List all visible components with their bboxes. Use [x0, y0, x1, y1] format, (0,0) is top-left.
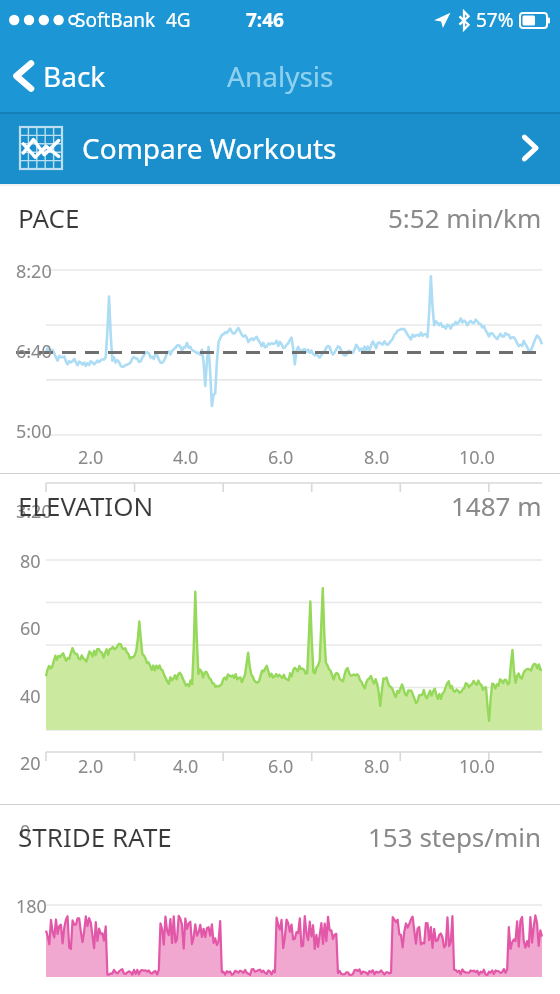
staticText: ELEVATION: [18, 488, 154, 523]
staticText: 40: [20, 684, 41, 709]
staticText: 10.0: [459, 754, 495, 779]
staticText: SoftBank: [75, 7, 156, 33]
staticText: 8.0: [364, 445, 390, 470]
staticText: 180: [16, 894, 47, 919]
staticText: 10.0: [459, 445, 495, 470]
staticText: 2.0: [78, 445, 104, 470]
staticText: 5:52 min/km: [388, 200, 542, 235]
other: Compare Workouts: [522, 135, 538, 161]
staticText: 1487 m: [451, 488, 542, 523]
staticText: 6.0: [268, 445, 294, 470]
button[interactable]: Compare Workouts: [0, 112, 560, 184]
staticText: 8:20: [16, 259, 52, 284]
staticText: 4.0: [173, 754, 199, 779]
staticText: 2.0: [78, 754, 104, 779]
staticText: 20: [20, 751, 41, 776]
staticText: 57%: [476, 7, 514, 33]
staticText: Analysis: [227, 57, 334, 95]
staticText: 0: [20, 819, 31, 844]
staticText: 6.0: [268, 754, 294, 779]
staticText: 4.0: [173, 445, 199, 470]
staticText: Back: [43, 57, 106, 95]
button[interactable]: Back: [0, 49, 124, 103]
staticText: 5:00: [16, 419, 52, 444]
staticText: PACE: [18, 200, 80, 235]
staticText: 3:20: [16, 499, 52, 524]
staticText: 4G: [166, 7, 191, 33]
staticText: 8.0: [364, 754, 390, 779]
staticText: Compare Workouts: [82, 129, 337, 167]
staticText: 80: [20, 549, 41, 574]
staticText: 6:40: [16, 339, 52, 364]
staticText: 60: [20, 616, 41, 641]
staticText: STRIDE RATE: [18, 819, 172, 854]
staticText: 153 steps/min: [368, 819, 542, 854]
staticText: 7:46: [246, 7, 284, 33]
